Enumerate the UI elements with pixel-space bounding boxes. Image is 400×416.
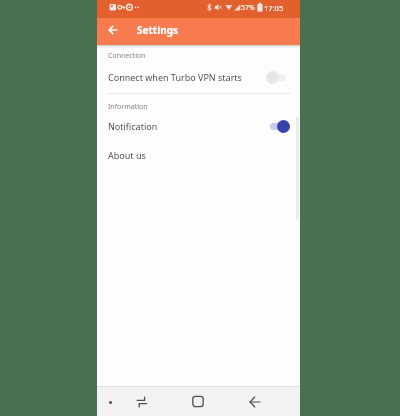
- button[interactable]: Notification: [97, 111, 300, 140]
- button[interactable]: [127, 386, 167, 416]
- staticText: About us: [108, 149, 146, 161]
- staticText: 17:05: [264, 3, 284, 13]
- button[interactable]: [105, 18, 121, 41]
- button[interactable]: Connect when Turbo VPN starts: [97, 62, 300, 91]
- staticText: Settings: [137, 23, 178, 37]
- staticText: Connect when Turbo VPN starts: [108, 71, 242, 83]
- button[interactable]: [178, 386, 218, 416]
- button[interactable]: [235, 386, 275, 416]
- staticText: Connection: [108, 51, 146, 61]
- staticText: 57%: [241, 3, 255, 13]
- button[interactable]: About us: [97, 140, 300, 169]
- staticText: Information: [108, 102, 148, 112]
- staticText: Notification: [108, 120, 158, 132]
